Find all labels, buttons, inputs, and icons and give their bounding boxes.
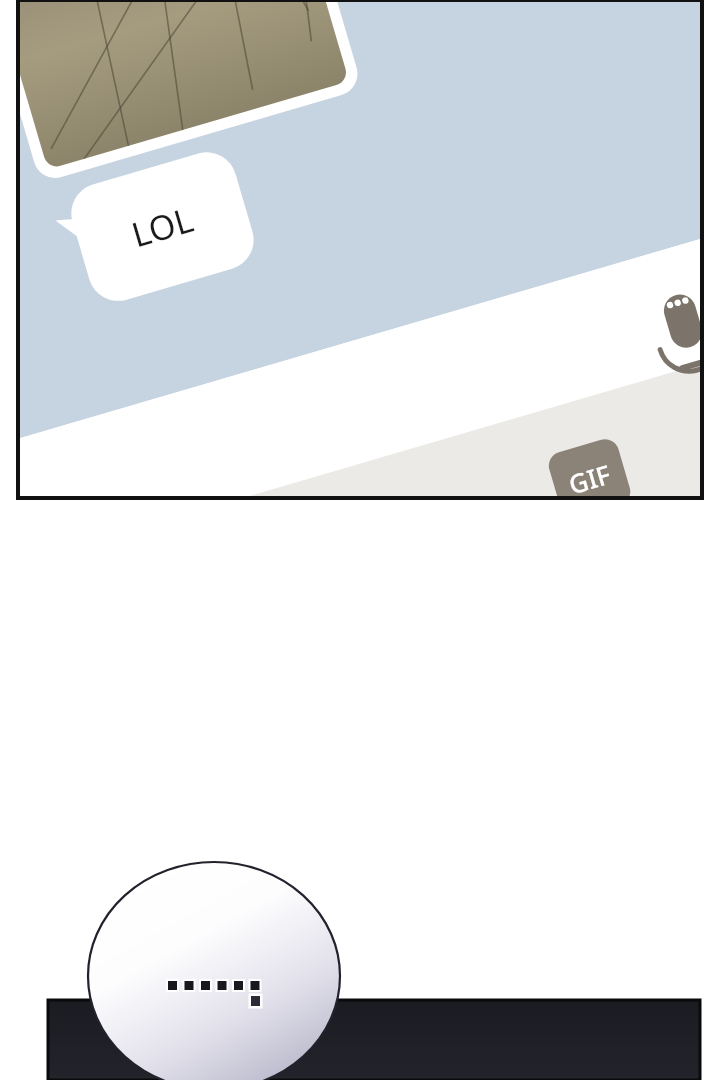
button[interactable]: Comic panel	[0, 0, 720, 1080]
